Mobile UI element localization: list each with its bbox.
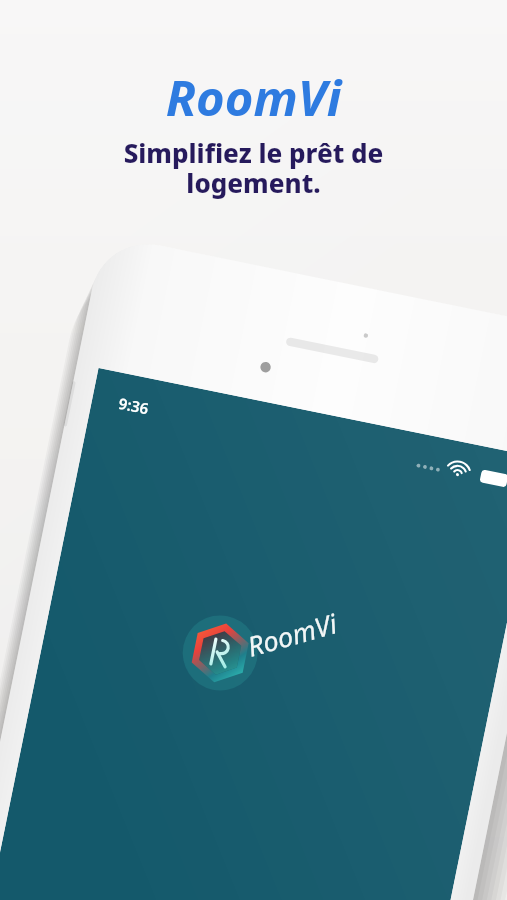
button[interactable]: RoomVi splash: [0, 0, 507, 900]
